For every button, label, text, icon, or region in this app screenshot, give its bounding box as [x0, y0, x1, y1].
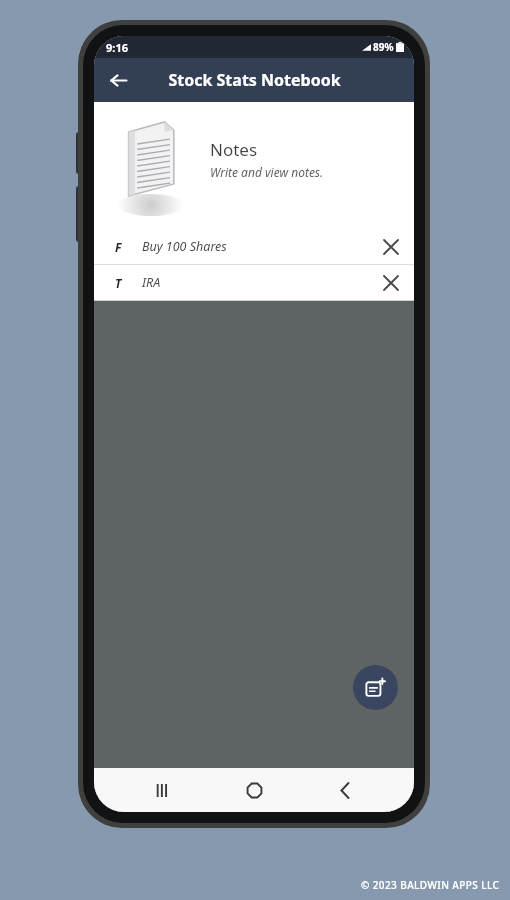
button[interactable]: Back: [323, 768, 367, 812]
staticText: 89%: [373, 40, 394, 54]
button[interactable]: Delete IRA: [368, 265, 414, 300]
staticText: IRA: [142, 274, 368, 291]
button[interactable]: T: [94, 265, 414, 300]
button[interactable]: Add note: [353, 665, 398, 710]
staticText: Write and view notes.: [210, 164, 324, 180]
button[interactable]: Notes: [94, 102, 414, 229]
staticText: 9:16: [106, 40, 128, 55]
button[interactable]: Home: [232, 768, 276, 812]
staticText: Notes: [210, 138, 258, 161]
button[interactable]: F: [94, 229, 414, 264]
staticText: Stock Stats Notebook: [168, 69, 341, 91]
staticText: F: [115, 239, 122, 255]
button[interactable]: Recents: [141, 768, 185, 812]
button[interactable]: Back: [100, 62, 136, 98]
staticText: © 2023 BALDWIN APPS LLC: [361, 878, 500, 892]
staticText: T: [115, 275, 122, 291]
staticText: Buy 100 Shares: [142, 238, 368, 255]
button[interactable]: Delete Buy 100 Shares: [368, 229, 414, 264]
